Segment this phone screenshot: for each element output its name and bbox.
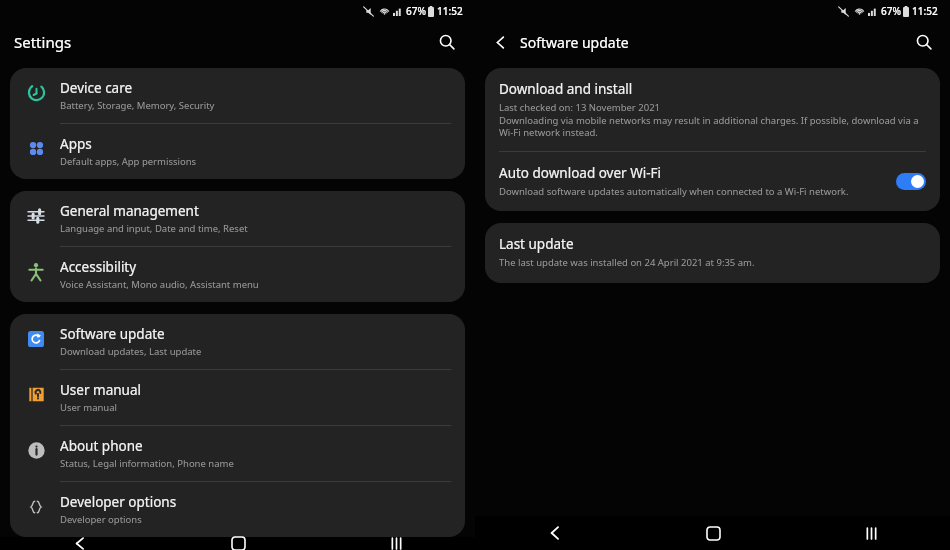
button[interactable]: Developer options: [10, 482, 465, 537]
staticText: 11:52: [437, 4, 463, 18]
staticText: Battery, Storage, Memory, Security: [60, 99, 215, 112]
button[interactable]: User manual: [10, 370, 465, 425]
staticText: Download software updates automatically …: [499, 185, 849, 198]
staticText: Download and install: [499, 80, 633, 98]
staticText: 67%: [406, 4, 426, 18]
staticText: Downloading via mobile networks may resu…: [499, 114, 926, 139]
button[interactable]: Home: [159, 537, 317, 550]
staticText: Accessibility: [60, 258, 137, 276]
staticText: Device care: [60, 79, 133, 97]
staticText: Developer options: [60, 513, 142, 526]
button[interactable]: Accessibility: [10, 247, 465, 302]
staticText: General management: [60, 202, 199, 220]
staticText: About phone: [60, 437, 143, 455]
button[interactable]: Back: [0, 537, 159, 550]
staticText: Settings: [14, 32, 72, 52]
button[interactable]: General management: [10, 191, 465, 246]
button[interactable]: Download and install: [485, 68, 940, 151]
staticText: Download updates, Last update: [60, 345, 202, 358]
staticText: Last checked on: 13 November 2021: [499, 101, 660, 114]
staticText: Developer options: [60, 493, 177, 511]
staticText: Last update: [499, 235, 574, 253]
staticText: Voice Assistant, Mono audio, Assistant m…: [60, 278, 259, 291]
staticText: 67%: [881, 4, 901, 18]
button[interactable]: Back: [475, 516, 634, 550]
staticText: 11:52: [912, 4, 938, 18]
button[interactable]: Auto download over Wi-Fi: [896, 173, 926, 190]
button[interactable]: Auto download over Wi-Fi: [485, 152, 940, 211]
staticText: Status, Legal information, Phone name: [60, 457, 234, 470]
button[interactable]: Back: [487, 29, 513, 55]
button[interactable]: Search: [910, 28, 938, 56]
staticText: Language and input, Date and time, Reset: [60, 222, 248, 235]
staticText: Default apps, App permissions: [60, 155, 197, 168]
staticText: User manual: [60, 381, 141, 399]
staticText: Auto download over Wi-Fi: [499, 164, 662, 182]
staticText: User manual: [60, 401, 117, 414]
button[interactable]: Apps: [10, 124, 465, 179]
button[interactable]: Recents: [792, 516, 950, 550]
button[interactable]: Software update: [10, 314, 465, 369]
staticText: Apps: [60, 135, 92, 153]
button[interactable]: Home: [634, 516, 792, 550]
button[interactable]: Recents: [317, 537, 475, 550]
button[interactable]: Last update: [485, 223, 940, 283]
staticText: Software update: [520, 33, 629, 52]
button[interactable]: Device care: [10, 68, 465, 123]
staticText: The last update was installed on 24 Apri…: [499, 256, 755, 269]
button[interactable]: Search: [433, 28, 461, 56]
button[interactable]: About phone: [10, 426, 465, 481]
staticText: Software update: [60, 325, 165, 343]
